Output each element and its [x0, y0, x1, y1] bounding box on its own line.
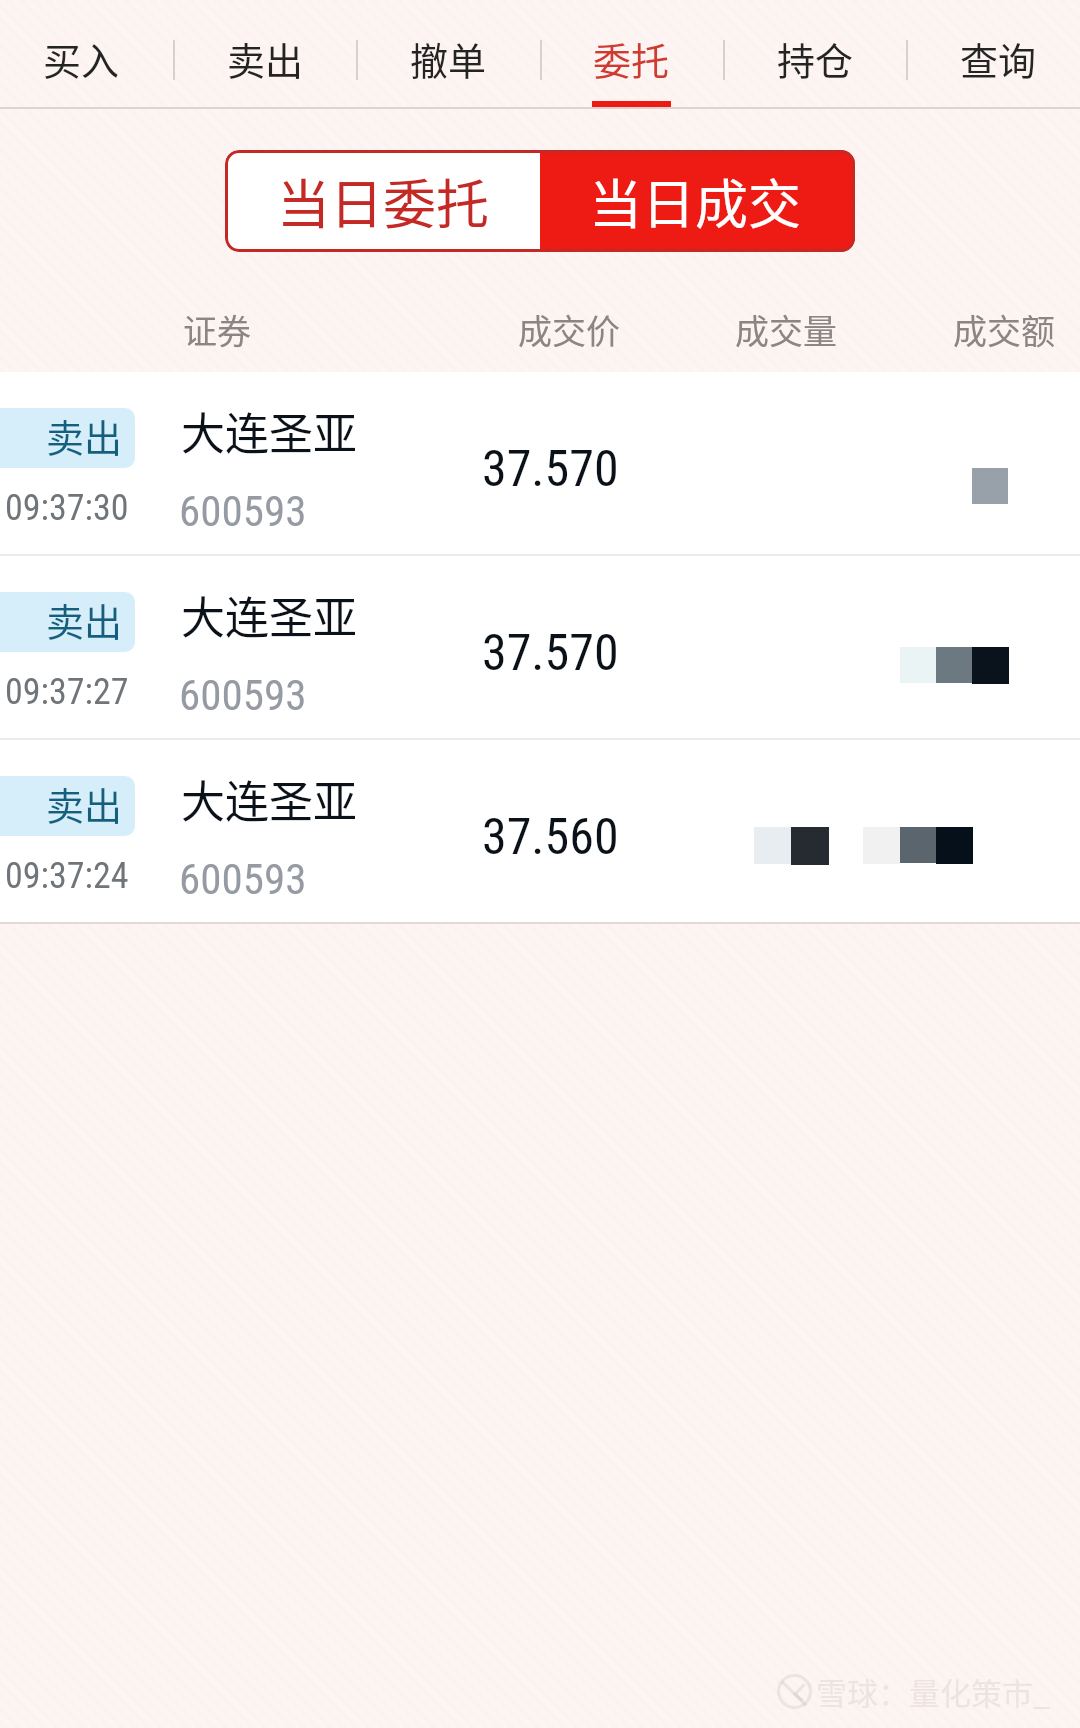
staticText: 当日委托 — [277, 163, 489, 240]
staticText: 37.560 — [482, 808, 619, 867]
other: Xueqiu watermark — [776, 1673, 813, 1710]
staticText: 大连圣亚 — [181, 583, 357, 647]
button[interactable]: 卖出 — [175, 0, 355, 109]
staticText: 持仓 — [777, 31, 854, 86]
staticText: 成交价 — [518, 305, 620, 354]
button[interactable]: 查询 — [908, 0, 1080, 109]
button[interactable]: 撤单 — [358, 0, 538, 109]
button[interactable]: 卖出 — [0, 372, 1080, 554]
staticText: 证券 — [183, 305, 251, 354]
staticText: 600593 — [179, 486, 307, 536]
button[interactable]: 委托 — [541, 0, 721, 109]
button[interactable]: 卖出 — [0, 556, 1080, 738]
button[interactable]: 当日委托 — [225, 150, 540, 252]
button[interactable]: 持仓 — [725, 0, 905, 109]
staticText: 雪球：量化策市_ — [816, 1669, 1051, 1714]
staticText: 37.570 — [482, 440, 619, 499]
staticText: 09:37:30 — [5, 487, 129, 529]
staticText: 卖出 — [46, 408, 123, 463]
button[interactable]: 当日成交 — [540, 150, 855, 252]
staticText: 大连圣亚 — [181, 399, 357, 463]
staticText: 成交额 — [953, 305, 1055, 354]
staticText: 大连圣亚 — [181, 767, 357, 831]
staticText: 600593 — [179, 670, 307, 720]
staticText: 买入 — [43, 31, 120, 86]
staticText: 37.570 — [482, 624, 619, 683]
staticText: 撤单 — [410, 31, 487, 86]
staticText: 成交量 — [735, 305, 837, 354]
staticText: 09:37:24 — [5, 855, 129, 897]
staticText: 当日成交 — [589, 163, 801, 240]
staticText: 600593 — [179, 854, 307, 904]
button[interactable]: 买入 — [0, 0, 171, 109]
staticText: 委托 — [593, 31, 670, 86]
staticText: 卖出 — [46, 592, 123, 647]
staticText: 卖出 — [227, 31, 304, 86]
button[interactable]: 卖出 — [0, 740, 1080, 922]
staticText: 查询 — [960, 31, 1037, 86]
staticText: 09:37:27 — [5, 671, 129, 713]
staticText: 卖出 — [46, 776, 123, 831]
